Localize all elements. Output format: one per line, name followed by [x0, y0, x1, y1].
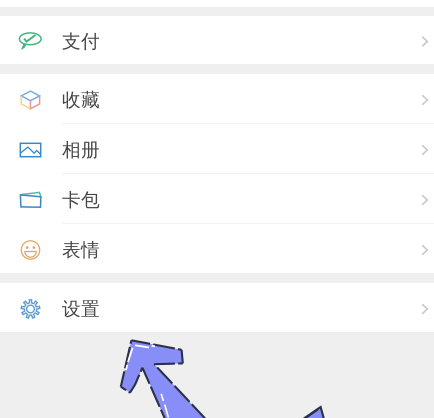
button[interactable]: 相册: [0, 124, 434, 173]
button[interactable]: 卡包: [0, 174, 434, 223]
staticText: 表情: [62, 238, 100, 261]
button[interactable]: 表情: [0, 224, 434, 273]
staticText: 设置: [62, 297, 100, 320]
staticText: 收藏: [62, 88, 100, 111]
button[interactable]: 支付: [0, 16, 434, 64]
button[interactable]: 设置: [0, 283, 434, 332]
button[interactable]: 收藏: [0, 74, 434, 123]
staticText: 相册: [62, 138, 100, 161]
staticText: 支付: [62, 30, 100, 53]
staticText: 卡包: [62, 188, 100, 211]
